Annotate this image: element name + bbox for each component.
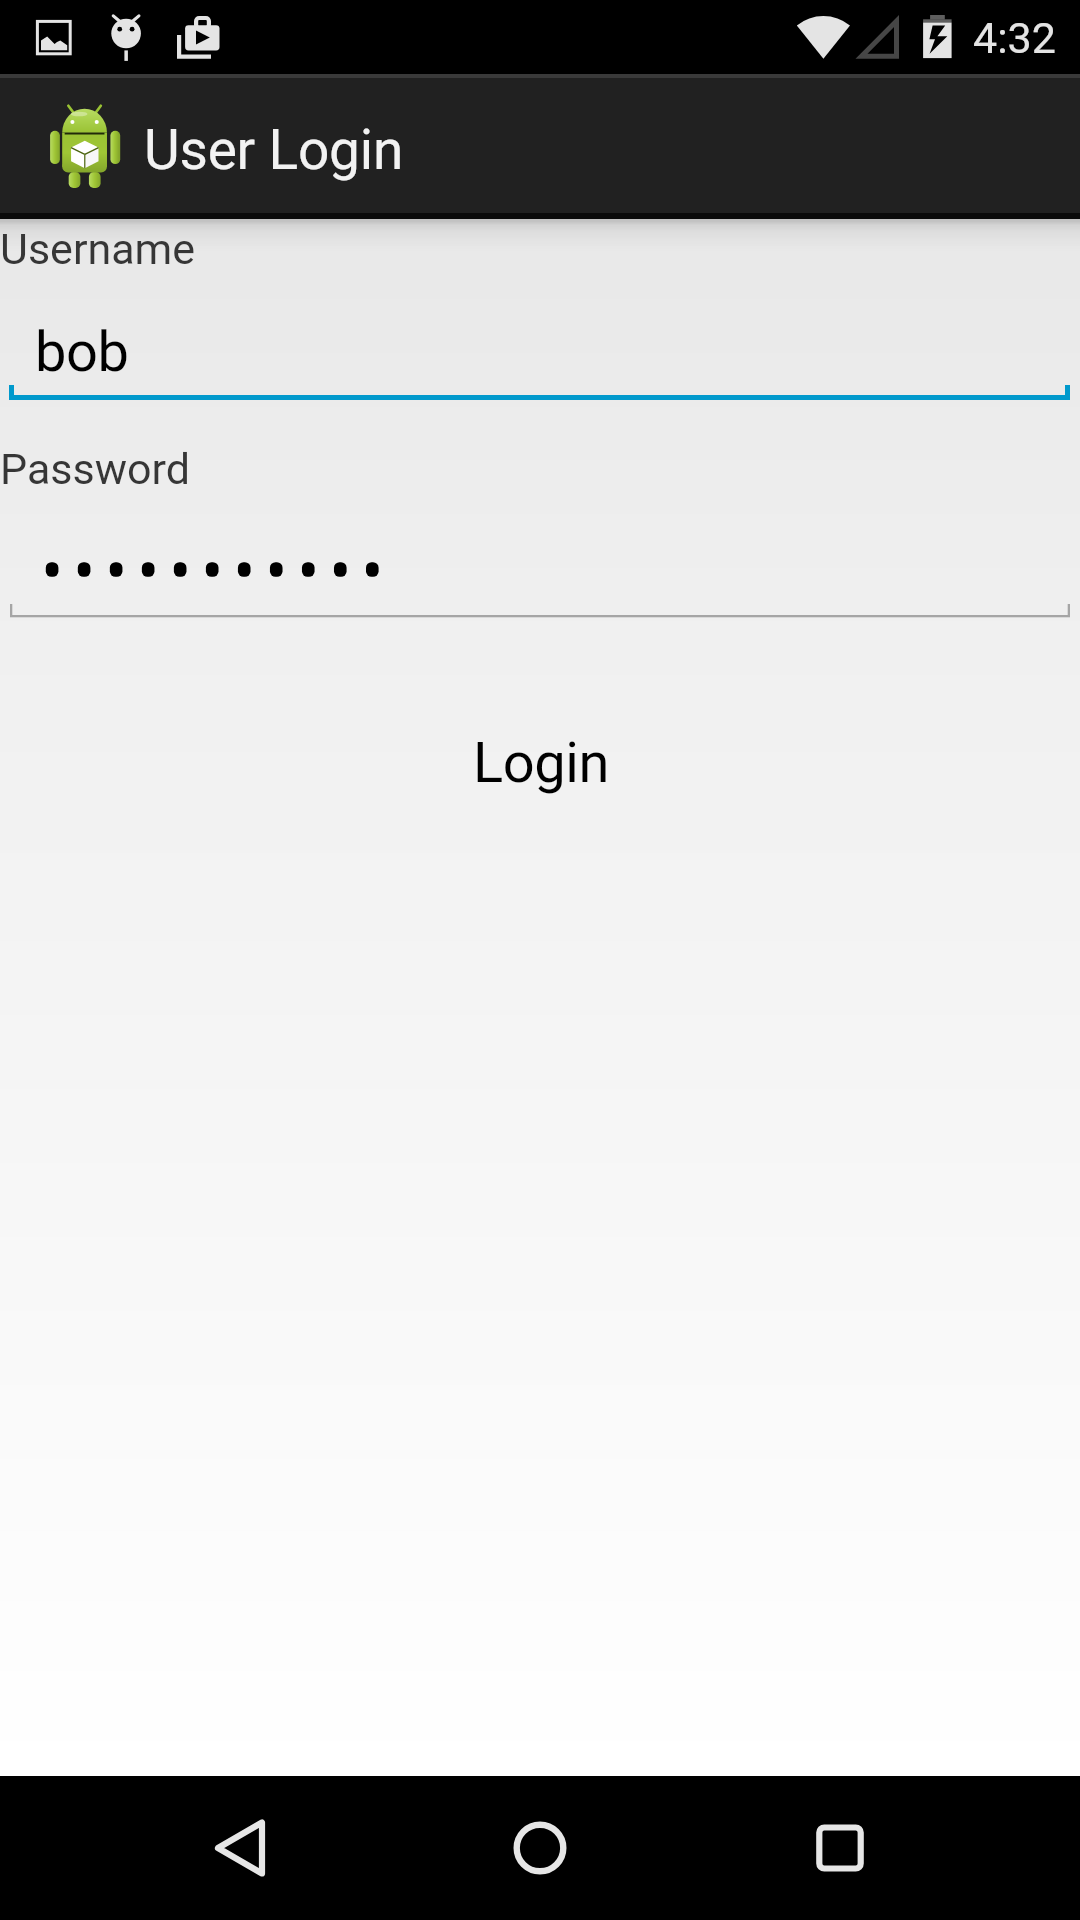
button[interactable]: bob	[0, 281, 1080, 401]
button[interactable]: Recent apps	[780, 1788, 900, 1908]
button[interactable]: Login	[0, 698, 1080, 794]
staticText: Username	[0, 224, 196, 274]
button[interactable]: Back	[180, 1788, 300, 1908]
staticText: bob	[35, 319, 129, 385]
staticText: Password	[0, 444, 190, 494]
staticText: 4:32	[973, 13, 1056, 63]
staticText: Login	[473, 730, 610, 796]
staticText: User Login	[144, 118, 404, 182]
button[interactable]	[0, 502, 1080, 618]
button[interactable]: Home	[480, 1788, 600, 1908]
